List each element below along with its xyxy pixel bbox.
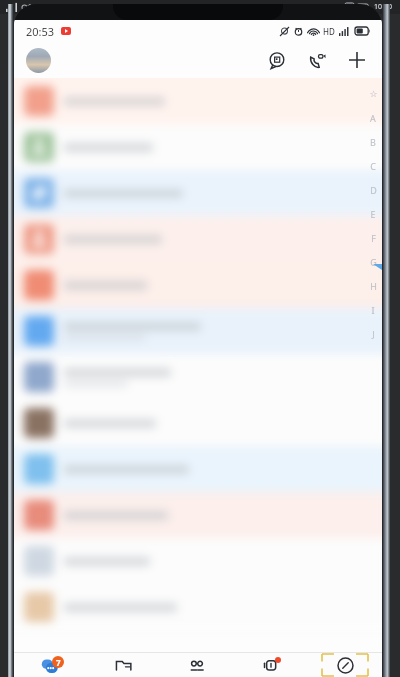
button[interactable] (14, 400, 382, 446)
staticText: 20:53 (26, 24, 55, 39)
staticText: A (370, 112, 376, 124)
button[interactable] (14, 354, 382, 400)
button[interactable]: Profile (26, 48, 51, 73)
button[interactable]: E (366, 202, 380, 226)
button[interactable]: D (366, 178, 380, 202)
button[interactable]: ☆ (366, 82, 380, 106)
button[interactable]: Chats (14, 653, 87, 677)
button[interactable] (14, 216, 382, 262)
button[interactable]: A (366, 106, 380, 130)
staticText: J (372, 328, 375, 340)
staticText: I (371, 304, 375, 316)
button[interactable]: Add (344, 47, 370, 73)
staticText: G (370, 256, 377, 268)
button[interactable]: Me (308, 653, 382, 677)
staticText: 7 (56, 657, 61, 668)
button[interactable] (14, 170, 382, 216)
button[interactable] (14, 538, 382, 584)
button[interactable]: Files (87, 653, 160, 677)
button[interactable] (14, 446, 382, 492)
button[interactable] (14, 492, 382, 538)
staticText: E (370, 208, 376, 220)
staticText: HD (323, 26, 335, 37)
button[interactable]: Video call (304, 47, 330, 73)
staticText: D (370, 184, 377, 196)
button[interactable] (14, 78, 382, 124)
button[interactable]: J (366, 322, 380, 346)
staticText: B (370, 136, 376, 148)
button[interactable]: G (366, 250, 380, 274)
staticText: 10:10 (374, 2, 392, 12)
staticText: H (370, 280, 377, 292)
button[interactable]: Discover (234, 653, 308, 677)
staticText: C (370, 160, 376, 172)
button[interactable] (14, 584, 382, 630)
button[interactable] (14, 262, 382, 308)
button[interactable] (14, 124, 382, 170)
button[interactable]: B (366, 130, 380, 154)
staticText: F (371, 232, 376, 244)
button[interactable]: Contacts (160, 653, 234, 677)
button[interactable]: C (366, 154, 380, 178)
staticText: ☆ (369, 89, 378, 99)
button[interactable]: F (366, 226, 380, 250)
button[interactable]: I (366, 298, 380, 322)
button[interactable]: Scan (264, 47, 290, 73)
button[interactable] (14, 308, 382, 354)
button[interactable]: H (366, 274, 380, 298)
